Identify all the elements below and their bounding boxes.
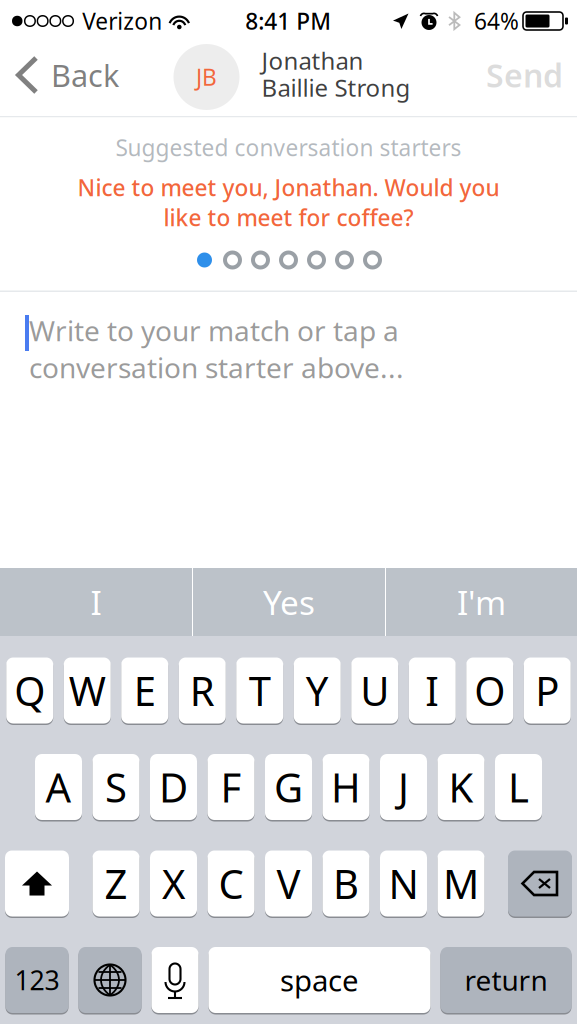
staticText: H — [331, 760, 361, 813]
button[interactable]: N — [380, 849, 427, 918]
staticText: B — [333, 857, 359, 910]
staticText: F — [220, 760, 241, 813]
staticText: JB — [196, 62, 217, 92]
staticText: Z — [104, 857, 127, 910]
staticText: C — [218, 857, 243, 910]
staticText: E — [134, 664, 156, 717]
staticText: O — [474, 664, 505, 717]
staticText: L — [508, 760, 529, 813]
staticText: J — [398, 760, 409, 813]
staticText: R — [190, 664, 215, 717]
staticText: A — [45, 760, 71, 813]
staticText: Verizon — [82, 6, 162, 36]
staticText: Send — [486, 54, 563, 96]
staticText: S — [105, 760, 127, 813]
staticText: Y — [306, 664, 329, 717]
staticText: I — [425, 664, 439, 717]
button[interactable]: B — [322, 849, 369, 918]
staticText: Yes — [263, 580, 315, 624]
button[interactable]: X — [150, 849, 197, 918]
staticText: X — [162, 857, 185, 910]
button[interactable]: Back — [0, 50, 118, 108]
button[interactable]: J — [380, 752, 427, 821]
staticText: 8:41 PM — [245, 6, 331, 36]
staticText: Suggested conversation starters — [115, 132, 461, 162]
button[interactable]: D — [150, 752, 197, 821]
button[interactable]: Dictation — [151, 945, 198, 1014]
button[interactable]: space — [208, 945, 430, 1014]
button[interactable]: Shift — [5, 849, 69, 918]
button[interactable]: Backspace — [508, 849, 572, 918]
button[interactable]: M — [437, 849, 484, 918]
staticText: W — [69, 664, 106, 717]
staticText: N — [388, 857, 418, 910]
button[interactable]: A — [35, 752, 82, 821]
button[interactable]: G — [265, 752, 312, 821]
staticText: I — [90, 580, 101, 624]
button[interactable]: T — [236, 656, 283, 725]
button[interactable]: 123 — [5, 945, 68, 1014]
button[interactable]: Q — [6, 656, 53, 725]
button[interactable]: U — [351, 656, 398, 725]
button[interactable]: O — [466, 656, 513, 725]
button[interactable]: I — [0, 568, 192, 636]
staticText: K — [448, 760, 473, 813]
staticText: conversation starter above... — [29, 349, 404, 386]
staticText: Q — [14, 664, 45, 717]
button[interactable]: K — [437, 752, 484, 821]
staticText: 64% — [474, 6, 519, 36]
button[interactable]: return — [440, 945, 571, 1014]
staticText: Jonathan — [261, 45, 363, 76]
button[interactable]: Nice to meet you, Jonathan. Would you — [0, 158, 577, 230]
button[interactable]: Next keyboard — [78, 945, 141, 1014]
button[interactable]: Y — [294, 656, 341, 725]
staticText: G — [274, 760, 303, 813]
button[interactable]: R — [179, 656, 226, 725]
button[interactable]: Z — [92, 849, 139, 918]
button[interactable]: Yes — [193, 568, 385, 636]
button[interactable]: C — [207, 849, 254, 918]
staticText: 123 — [14, 962, 59, 998]
button[interactable]: H — [322, 752, 369, 821]
staticText: space — [280, 960, 359, 999]
staticText: I'm — [457, 580, 506, 624]
staticText: P — [535, 664, 559, 717]
button[interactable]: V — [265, 849, 312, 918]
button[interactable]: I — [409, 656, 456, 725]
staticText: Write to your match or tap a — [29, 312, 399, 349]
button[interactable]: F — [207, 752, 254, 821]
staticText: like to meet for coffee? — [163, 202, 413, 232]
staticText: return — [464, 961, 547, 999]
staticText: Back — [51, 55, 119, 95]
button[interactable]: P — [524, 656, 571, 725]
button[interactable]: L — [495, 752, 542, 821]
staticText: T — [249, 664, 271, 717]
button[interactable]: W — [64, 656, 111, 725]
button[interactable]: S — [92, 752, 139, 821]
staticText: M — [443, 857, 479, 910]
button[interactable]: I'm — [386, 568, 577, 636]
staticText: V — [276, 857, 300, 910]
staticText: Baillie Strong — [261, 72, 410, 103]
button[interactable]: Send — [486, 49, 577, 109]
staticText: D — [159, 760, 188, 813]
staticText: Nice to meet you, Jonathan. Would you — [77, 172, 499, 202]
button[interactable]: E — [121, 656, 168, 725]
staticText: U — [360, 664, 389, 717]
